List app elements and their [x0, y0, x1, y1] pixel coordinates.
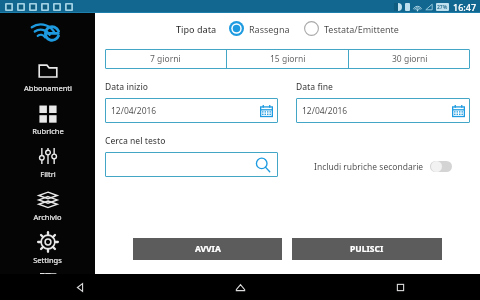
- button[interactable]: Back: [0, 274, 160, 300]
- button[interactable]: Includi rubriche secondarie: [296, 154, 470, 179]
- staticText: Abbonamenti: [24, 83, 72, 93]
- button[interactable]: Recents: [320, 274, 480, 300]
- button[interactable]: AVVIA: [133, 238, 282, 260]
- staticText: 12/04/2016: [302, 105, 348, 117]
- staticText: Cerca nel testo: [105, 135, 166, 147]
- button[interactable]: Filtri: [0, 143, 95, 186]
- other: Pick date: [260, 105, 273, 117]
- button[interactable]: 12/04/2016: [105, 98, 278, 123]
- staticText: Testata/Emittente: [324, 23, 399, 35]
- staticText: Settings: [33, 255, 62, 265]
- staticText: AVVIA: [195, 243, 221, 255]
- button[interactable]: Home: [160, 274, 320, 300]
- button[interactable]: Testata/Emittente: [304, 21, 399, 36]
- staticText: Data inizio: [105, 81, 148, 93]
- staticText: Includi rubriche secondarie: [314, 161, 424, 173]
- staticText: 15 giorni: [270, 53, 306, 65]
- staticText: Tipo data: [176, 23, 217, 35]
- button[interactable]: 30 giorni: [349, 49, 470, 69]
- staticText: Rassegna: [249, 23, 290, 35]
- staticText: 12/04/2016: [111, 105, 157, 117]
- button[interactable]: Logout: [0, 272, 95, 274]
- button[interactable]: Archivio: [0, 186, 95, 229]
- staticText: 7 giorni: [150, 53, 181, 65]
- other: Pick date: [452, 105, 465, 117]
- staticText: Archivio: [33, 212, 62, 222]
- staticText: Rubriche: [32, 126, 64, 136]
- button[interactable]: 15 giorni: [227, 49, 348, 69]
- button[interactable]: PULISCI: [292, 238, 442, 260]
- button[interactable]: 7 giorni: [105, 49, 226, 69]
- staticText: 16:47: [453, 1, 477, 13]
- button[interactable]: Abbonamenti: [0, 57, 95, 100]
- other: Search: [255, 157, 271, 173]
- button[interactable]: 12/04/2016: [296, 98, 470, 123]
- button[interactable]: Rubriche: [0, 100, 95, 143]
- staticText: Filtri: [40, 169, 56, 179]
- staticText: PULISCI: [350, 243, 384, 255]
- button[interactable]: Logo: [31, 19, 65, 47]
- staticText: 30 giorni: [392, 53, 428, 65]
- button[interactable]: Rassegna: [229, 21, 290, 36]
- staticText: Data fine: [296, 81, 333, 93]
- staticText: 27%: [437, 4, 448, 11]
- button[interactable]: Settings: [0, 229, 95, 272]
- button[interactable]: Search: [105, 152, 278, 177]
